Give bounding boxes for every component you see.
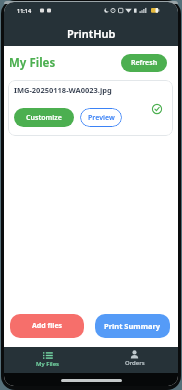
- staticText: Preview: [88, 113, 115, 123]
- button[interactable]: Print Summary: [95, 314, 170, 338]
- staticText: Print Summary: [104, 321, 161, 331]
- staticText: My Files: [9, 55, 56, 71]
- staticText: Refresh: [131, 58, 158, 68]
- button[interactable]: Orders: [91, 347, 178, 373]
- button[interactable]: Refresh: [121, 54, 167, 72]
- staticText: Customize: [26, 113, 62, 123]
- staticText: PrintHub: [67, 26, 116, 41]
- staticText: IMG-20250118-WA0023.jpg: [14, 85, 112, 95]
- button[interactable]: Preview: [80, 108, 122, 127]
- button[interactable]: My Files: [4, 347, 91, 373]
- staticText: 11:14: [17, 7, 32, 14]
- staticText: Orders: [125, 359, 145, 367]
- button[interactable]: Add files: [10, 314, 84, 338]
- staticText: Add files: [32, 321, 63, 331]
- button[interactable]: IMG-20250118-WA0023.jpg: [8, 80, 173, 136]
- button[interactable]: Customize: [14, 108, 74, 127]
- staticText: My Files: [36, 360, 60, 368]
